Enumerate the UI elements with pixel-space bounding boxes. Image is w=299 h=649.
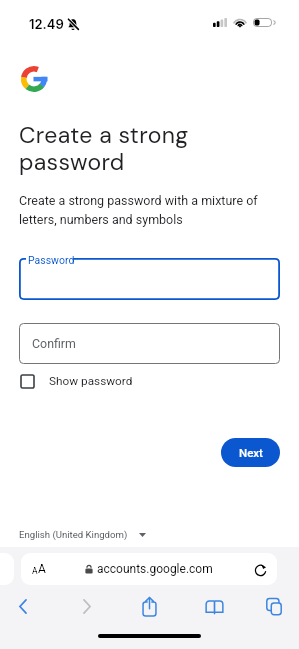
button[interactable]: Next [221, 438, 280, 467]
button[interactable]: Tabs [258, 590, 290, 622]
button[interactable]: Back [7, 590, 39, 622]
staticText: Next [239, 446, 263, 459]
button[interactable]: A [21, 553, 277, 585]
button[interactable]: Confirm [19, 323, 280, 364]
button[interactable]: English (United Kingdom) [19, 529, 146, 540]
staticText: Password [28, 254, 75, 266]
staticText: Create a strong password [19, 120, 189, 177]
staticText: A [32, 566, 38, 576]
staticText: Create a strong password with a mixture … [19, 193, 258, 227]
button[interactable]: Show password [17, 371, 137, 391]
staticText: 12.49 [29, 16, 64, 32]
button[interactable]: Bookmarks [198, 590, 230, 622]
staticText: English (United Kingdom) [19, 529, 128, 540]
staticText: A [38, 562, 46, 576]
button[interactable]: Forward [71, 590, 103, 622]
staticText: accounts.google.com [97, 562, 213, 576]
staticText: Confirm [32, 336, 76, 351]
staticText: Show password [49, 374, 133, 388]
button[interactable]: Reload [254, 562, 268, 576]
button[interactable]: Share [133, 590, 165, 622]
